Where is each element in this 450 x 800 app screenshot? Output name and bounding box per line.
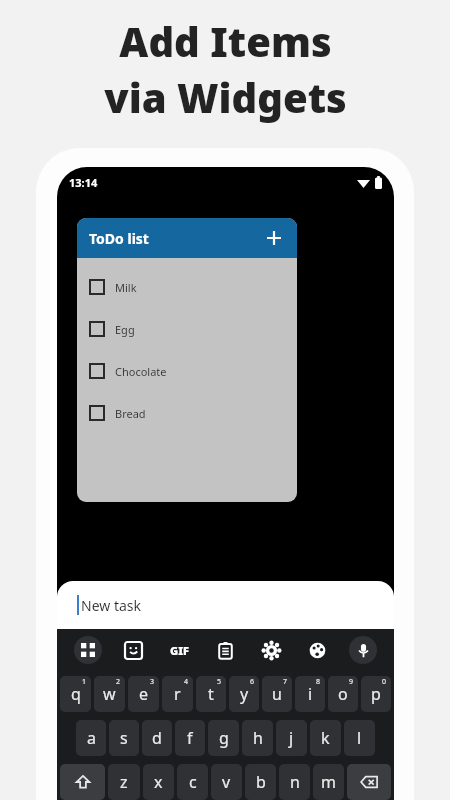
button[interactable]: s	[109, 720, 139, 756]
staticText: t	[208, 683, 214, 705]
staticText: a	[87, 727, 96, 749]
button[interactable]: l	[344, 720, 375, 756]
button[interactable]: z	[108, 764, 140, 800]
button[interactable]: u	[262, 676, 292, 712]
staticText: 9	[349, 677, 354, 687]
staticText: n	[290, 771, 300, 793]
staticText: Egg	[115, 322, 135, 337]
button[interactable]: Apps	[65, 629, 110, 671]
button[interactable]: t	[196, 676, 226, 712]
staticText: 4	[184, 677, 189, 687]
button[interactable]: x	[143, 764, 174, 800]
staticText: 6	[250, 677, 255, 687]
button[interactable]: GIF	[156, 629, 202, 671]
staticText: b	[256, 771, 266, 793]
staticText: p	[371, 683, 381, 705]
staticText: r	[174, 683, 181, 705]
button[interactable]: Add item	[263, 227, 285, 249]
staticText: d	[152, 727, 162, 749]
button[interactable]: e	[128, 676, 159, 712]
staticText: Bread	[115, 406, 146, 421]
staticText: h	[253, 727, 263, 749]
staticText: 8	[316, 677, 321, 687]
button[interactable]: g	[208, 720, 239, 756]
button[interactable]: d	[142, 720, 172, 756]
staticText: ToDo list	[89, 229, 149, 248]
staticText: o	[338, 683, 348, 705]
staticText: Milk	[115, 280, 137, 295]
button[interactable]: k	[310, 720, 341, 756]
button[interactable]: h	[242, 720, 273, 756]
button[interactable]: n	[279, 764, 310, 800]
staticText: w	[103, 683, 116, 705]
staticText: z	[120, 771, 128, 793]
button[interactable]: Bread	[77, 392, 297, 434]
button[interactable]: a	[76, 720, 106, 756]
button[interactable]: Shift	[60, 764, 105, 800]
staticText: j	[289, 727, 294, 749]
button[interactable]: Themes	[294, 629, 340, 671]
staticText: k	[321, 727, 330, 749]
button[interactable]: y	[229, 676, 259, 712]
button[interactable]: Milk	[77, 266, 297, 308]
staticText: 0	[382, 677, 387, 687]
staticText: s	[120, 727, 128, 749]
staticText: 2	[116, 677, 121, 687]
button[interactable]: Settings	[248, 629, 294, 671]
button[interactable]: Backspace	[347, 764, 391, 800]
button[interactable]: w	[94, 676, 125, 712]
staticText: u	[272, 683, 282, 705]
staticText: 7	[283, 677, 288, 687]
button[interactable]: Voice input	[340, 629, 386, 671]
button[interactable]: ToDo list	[77, 218, 297, 258]
button[interactable]: r	[162, 676, 193, 712]
staticText: 3	[150, 677, 155, 687]
button[interactable]: v	[211, 764, 242, 800]
staticText: New task	[81, 596, 141, 615]
staticText: Add Items	[119, 14, 332, 68]
staticText: g	[219, 727, 229, 749]
button[interactable]: Chocolate	[77, 350, 297, 392]
button[interactable]: i	[295, 676, 325, 712]
staticText: m	[321, 771, 336, 793]
button[interactable]: New task	[57, 581, 394, 629]
button[interactable]: Egg	[77, 308, 297, 350]
button[interactable]: b	[245, 764, 276, 800]
staticText: Chocolate	[115, 364, 167, 379]
staticText: q	[71, 683, 81, 705]
staticText: 1	[82, 677, 87, 687]
staticText: y	[240, 683, 249, 705]
staticText: via Widgets	[104, 70, 347, 124]
staticText: c	[189, 771, 197, 793]
staticText: i	[308, 683, 313, 705]
staticText: x	[154, 771, 163, 793]
button[interactable]: q	[60, 676, 91, 712]
button[interactable]: c	[177, 764, 208, 800]
staticText: e	[139, 683, 149, 705]
staticText: 13:14	[69, 175, 98, 190]
button[interactable]: j	[276, 720, 307, 756]
staticText: l	[357, 727, 362, 749]
button[interactable]: Clipboard	[202, 629, 248, 671]
staticText: v	[222, 771, 231, 793]
button[interactable]: o	[328, 676, 358, 712]
button[interactable]: Stickers	[110, 629, 156, 671]
button[interactable]: p	[361, 676, 391, 712]
button[interactable]: m	[313, 764, 344, 800]
staticText: GIF	[170, 643, 189, 658]
staticText: 5	[217, 677, 222, 687]
button[interactable]: f	[175, 720, 205, 756]
staticText: f	[187, 727, 193, 749]
